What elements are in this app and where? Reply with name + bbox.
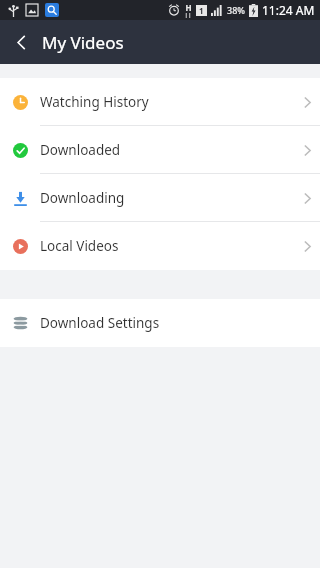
staticText: My Videos bbox=[42, 31, 124, 54]
button[interactable]: Downloading bbox=[0, 174, 320, 222]
button[interactable]: Back bbox=[0, 20, 42, 64]
staticText: Downloading bbox=[40, 189, 125, 207]
staticText: Downloaded bbox=[40, 141, 121, 159]
staticText: H bbox=[185, 2, 192, 13]
button[interactable]: Local Videos bbox=[0, 222, 320, 270]
button[interactable]: Downloaded bbox=[0, 126, 320, 174]
staticText: Watching History bbox=[40, 93, 149, 111]
staticText: Local Videos bbox=[40, 237, 119, 255]
staticText: 11:24 AM bbox=[262, 2, 315, 18]
staticText: 1 bbox=[199, 5, 204, 16]
staticText: Download Settings bbox=[40, 314, 160, 332]
staticText: 38% bbox=[227, 4, 245, 16]
button[interactable]: Watching History bbox=[0, 78, 320, 126]
button[interactable]: Download Settings bbox=[0, 299, 320, 347]
